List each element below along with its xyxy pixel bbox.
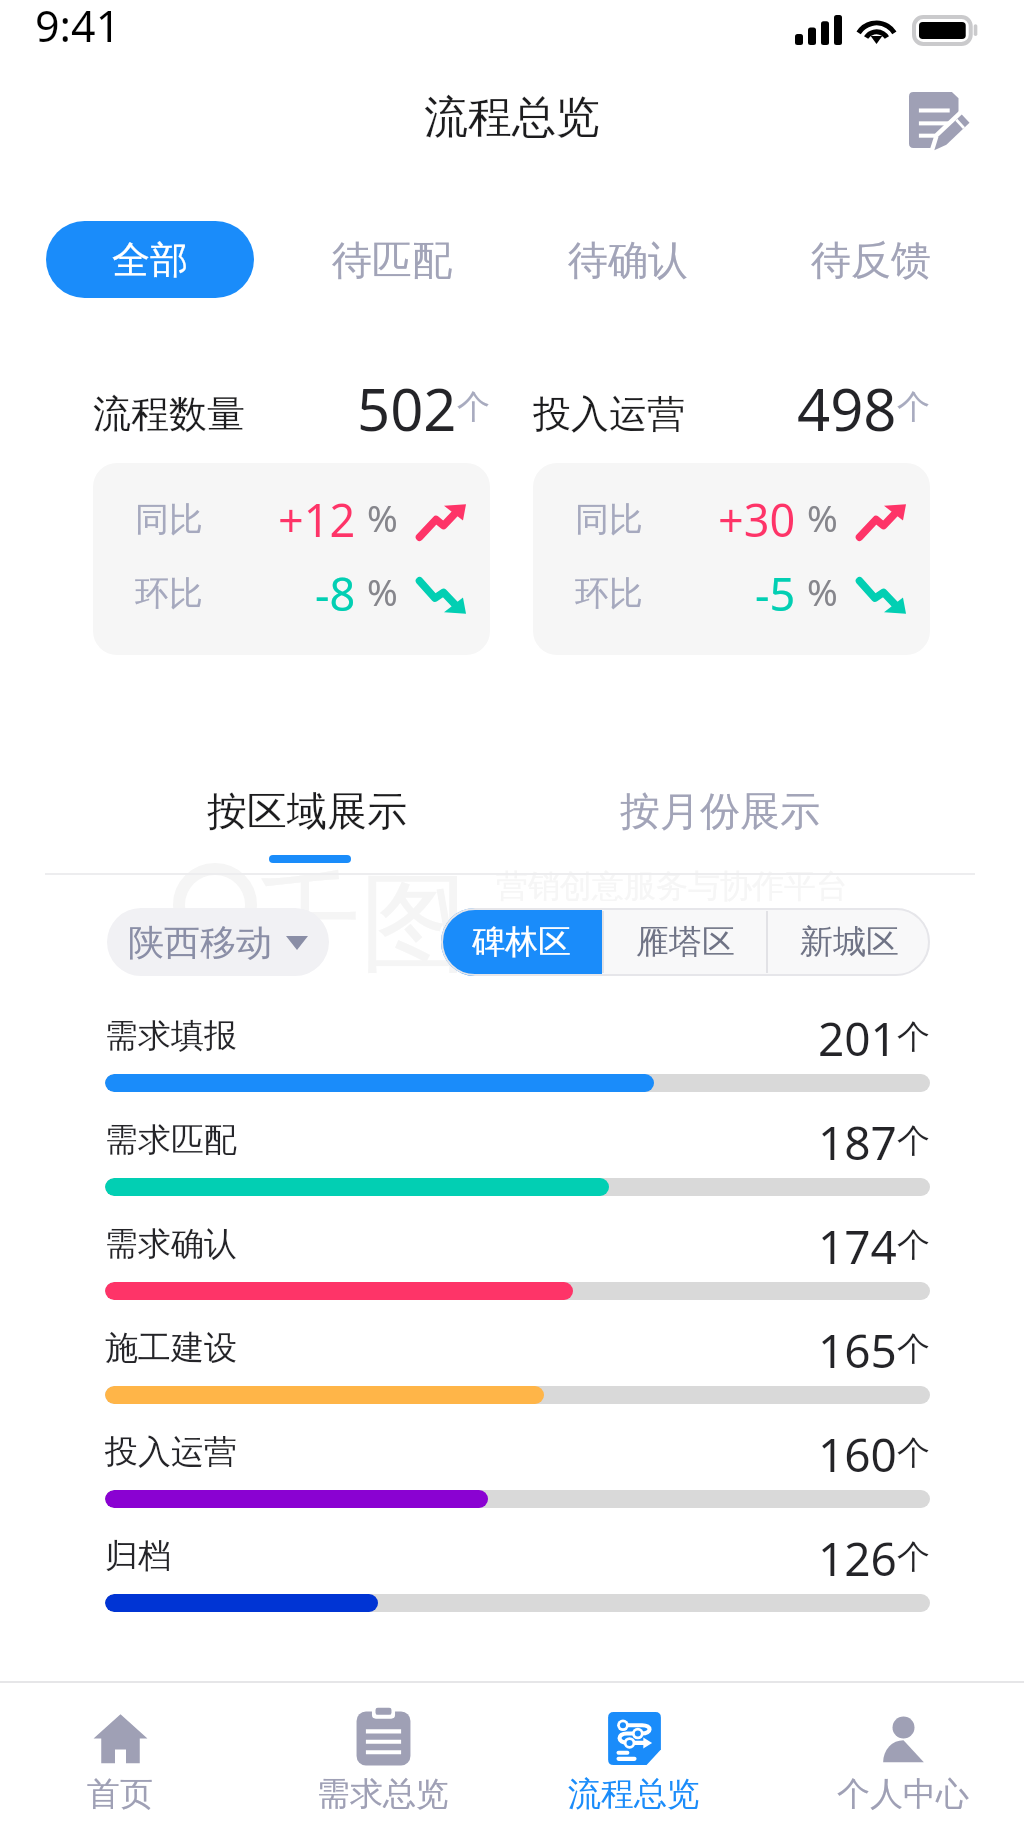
button[interactable]: 需求总览 — [283, 1683, 483, 1821]
staticText: 201 — [818, 1007, 897, 1070]
button[interactable]: 陕西移动 — [107, 908, 329, 976]
staticText: 环比 — [575, 572, 643, 615]
staticText: 同比 — [575, 498, 643, 541]
staticText: 投入运营 — [105, 1431, 237, 1473]
staticText: 个人中心 — [837, 1773, 969, 1815]
staticText: % — [367, 566, 398, 616]
staticText: 个 — [897, 386, 930, 428]
staticText: 需求匹配 — [105, 1119, 237, 1161]
button[interactable]: 待反馈 — [791, 221, 951, 298]
staticText: 498 — [797, 369, 897, 435]
staticText: % — [807, 566, 838, 616]
staticText: 流程总览 — [424, 90, 600, 145]
button[interactable]: 流程总览 — [534, 1683, 734, 1821]
staticText: 雁塔区 — [636, 921, 735, 963]
staticText: 环比 — [135, 572, 203, 615]
staticText: 187 — [818, 1111, 897, 1174]
staticText: 流程总览 — [568, 1773, 700, 1815]
staticText: 归档 — [105, 1535, 171, 1577]
staticText: 需求总览 — [317, 1773, 449, 1815]
staticText: 流程数量 — [93, 390, 245, 438]
staticText: 陕西移动 — [128, 920, 272, 965]
button[interactable]: 雁塔区 — [604, 908, 766, 976]
staticText: 待匹配 — [332, 235, 452, 285]
staticText: +30 — [718, 489, 796, 539]
staticText: 投入运营 — [533, 390, 685, 438]
staticText: 待反馈 — [811, 235, 931, 285]
button[interactable]: 全部 — [46, 221, 254, 298]
staticText: 碑林区 — [472, 921, 571, 963]
staticText: 新城区 — [800, 921, 899, 963]
button[interactable]: 个人中心 — [803, 1683, 1003, 1821]
staticText: 9:41 — [35, 0, 121, 55]
staticText: 160 — [818, 1423, 897, 1486]
staticText: 个 — [897, 1328, 930, 1370]
staticText: 千图 — [252, 856, 468, 992]
staticText: 个 — [897, 1016, 930, 1058]
staticText: 待确认 — [568, 235, 688, 285]
staticText: 个 — [897, 1536, 930, 1578]
button[interactable]: 新城区 — [768, 908, 930, 976]
staticText: 个 — [457, 386, 490, 428]
staticText: 个 — [897, 1432, 930, 1474]
staticText: % — [807, 492, 838, 542]
staticText: 502 — [357, 369, 457, 435]
staticText: % — [367, 492, 398, 542]
staticText: 同比 — [135, 498, 203, 541]
staticText: +12 — [278, 489, 356, 539]
button[interactable]: 待确认 — [548, 221, 708, 298]
button[interactable]: 按区域展示 — [187, 778, 427, 878]
staticText: 174 — [818, 1215, 897, 1278]
staticText: 126 — [818, 1527, 897, 1590]
button[interactable]: 碑林区 — [441, 908, 602, 976]
staticText: 全部 — [112, 236, 188, 284]
staticText: 165 — [818, 1319, 897, 1382]
staticText: 请获 — [566, 920, 646, 970]
staticText: -5 — [755, 563, 796, 613]
staticText: 营销创意服务与协作平台 — [496, 866, 848, 906]
button[interactable]: 首页 — [20, 1683, 220, 1821]
staticText: 首页 — [87, 1773, 153, 1815]
staticText: 个 — [897, 1120, 930, 1162]
staticText: 按月份展示 — [620, 786, 820, 836]
button[interactable]: 待匹配 — [312, 221, 472, 298]
staticText: -8 — [315, 563, 356, 613]
staticText: 施工建设 — [105, 1327, 237, 1369]
button[interactable]: Edit — [898, 80, 978, 160]
staticText: 需求填报 — [105, 1015, 237, 1057]
button[interactable]: 按月份展示 — [600, 778, 840, 878]
staticText: 按区域展示 — [207, 786, 407, 836]
staticText: 需求确认 — [105, 1223, 237, 1265]
staticText: 个 — [897, 1224, 930, 1266]
